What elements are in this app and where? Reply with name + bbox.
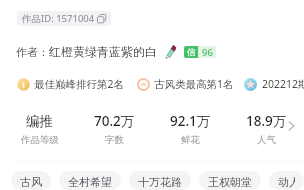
other: Edit author (165, 45, 176, 58)
button[interactable]: 作品ID: 1571004 (17, 11, 111, 26)
button[interactable]: 92.1万 (152, 112, 228, 146)
staticText: 信 (187, 47, 196, 58)
staticText: 古风 (20, 175, 42, 189)
staticText: 红橙黄绿青蓝紫的白 (49, 44, 157, 59)
button[interactable]: 信 (184, 46, 216, 58)
button[interactable]: 202212期 (244, 77, 304, 91)
staticText: 70.2万 (94, 112, 135, 130)
button[interactable]: 18.9万 (228, 112, 304, 146)
staticText: 鲜花 (181, 134, 200, 146)
button[interactable]: 全村希望 (59, 171, 121, 190)
staticText: 人气 (257, 134, 276, 146)
staticText: 作品等级 (21, 134, 59, 146)
button[interactable]: 动人情 (269, 171, 304, 190)
staticText: 作者： (16, 45, 49, 59)
button[interactable]: 十万花路 (129, 171, 191, 190)
button[interactable]: 最佳巅峰排行第2名 (17, 77, 125, 91)
staticText: 202212期 (262, 77, 304, 91)
staticText: 最佳巅峰排行第2名 (34, 77, 125, 91)
staticText: 王权朝堂 (208, 175, 252, 189)
staticText: 92.1万 (170, 112, 211, 130)
staticText: 全村希望 (68, 175, 112, 189)
button[interactable]: 古风类最高第1名 (137, 77, 234, 91)
other: More stats (288, 121, 295, 131)
button[interactable]: 70.2万 (77, 112, 152, 146)
staticText: 字数 (105, 134, 124, 146)
staticText: 十万花路 (138, 175, 182, 189)
staticText: 作品ID: 1571004 (22, 12, 95, 25)
button[interactable]: 王权朝堂 (199, 171, 261, 190)
staticText: 古风类最高第1名 (154, 77, 234, 91)
staticText: 96 (202, 46, 213, 58)
staticText: 动人情 (278, 175, 295, 189)
button[interactable]: 编推 (2, 113, 77, 146)
other: Copy work ID (97, 14, 106, 23)
staticText: 18.9万 (246, 112, 287, 130)
button[interactable]: 古风 (11, 171, 51, 190)
staticText: 编推 (26, 113, 53, 130)
